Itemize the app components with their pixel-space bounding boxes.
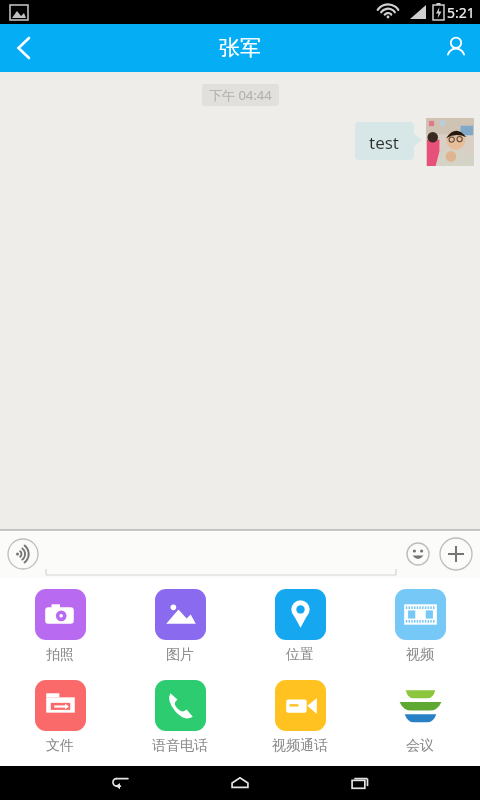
button[interactable]: 视频 <box>360 586 480 667</box>
button[interactable]: Recents <box>343 766 377 800</box>
button[interactable] <box>46 530 396 578</box>
button[interactable]: Voice message <box>6 537 40 571</box>
button[interactable]: 视频通话 <box>240 677 360 758</box>
staticText: 5:21 <box>447 3 475 22</box>
staticText: 图片 <box>166 646 194 664</box>
button[interactable]: Contact info <box>432 24 480 72</box>
button[interactable]: Emoji <box>402 538 434 570</box>
staticText: 视频 <box>406 646 434 664</box>
button[interactable]: 语音电话 <box>120 677 240 758</box>
button[interactable] <box>426 118 474 166</box>
button[interactable]: test <box>355 122 422 160</box>
button[interactable]: 会议 <box>360 677 480 758</box>
staticText: 会议 <box>406 737 434 755</box>
button[interactable]: Home <box>223 766 257 800</box>
staticText: 张军 <box>219 35 261 61</box>
staticText: 拍照 <box>46 646 74 664</box>
staticText: 位置 <box>286 646 314 664</box>
button[interactable]: Back <box>103 766 137 800</box>
staticText: test <box>369 131 400 151</box>
staticText: 下午 04:44 <box>209 86 272 104</box>
button[interactable]: Add attachment <box>438 536 474 572</box>
staticText: 视频通话 <box>272 737 328 755</box>
button[interactable]: Back <box>0 24 48 72</box>
staticText: 文件 <box>46 737 74 755</box>
button[interactable]: 文件 <box>0 677 120 758</box>
button[interactable]: 拍照 <box>0 586 120 667</box>
staticText: 语音电话 <box>152 737 208 755</box>
button[interactable]: 位置 <box>240 586 360 667</box>
button[interactable]: 图片 <box>120 586 240 667</box>
